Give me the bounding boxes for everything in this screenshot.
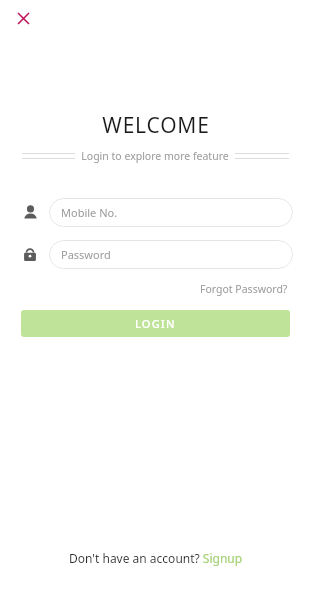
staticText: LOGIN — [135, 316, 176, 331]
button[interactable]: Don't have an account? Signup — [61, 546, 251, 570]
staticText: Forgot Password? — [200, 282, 288, 296]
button[interactable]: Forgot Password? — [198, 280, 290, 298]
button[interactable]: Mobile No. — [49, 198, 293, 227]
staticText: Don't have an account? Signup — [69, 550, 243, 566]
staticText: Password — [61, 247, 111, 262]
staticText: WELCOME — [102, 111, 210, 140]
button[interactable]: Close — [11, 6, 35, 30]
staticText: Mobile No. — [61, 205, 118, 220]
staticText: Login to explore more feature — [81, 149, 229, 163]
button[interactable]: LOGIN — [21, 310, 290, 337]
button[interactable]: Password — [49, 240, 293, 269]
